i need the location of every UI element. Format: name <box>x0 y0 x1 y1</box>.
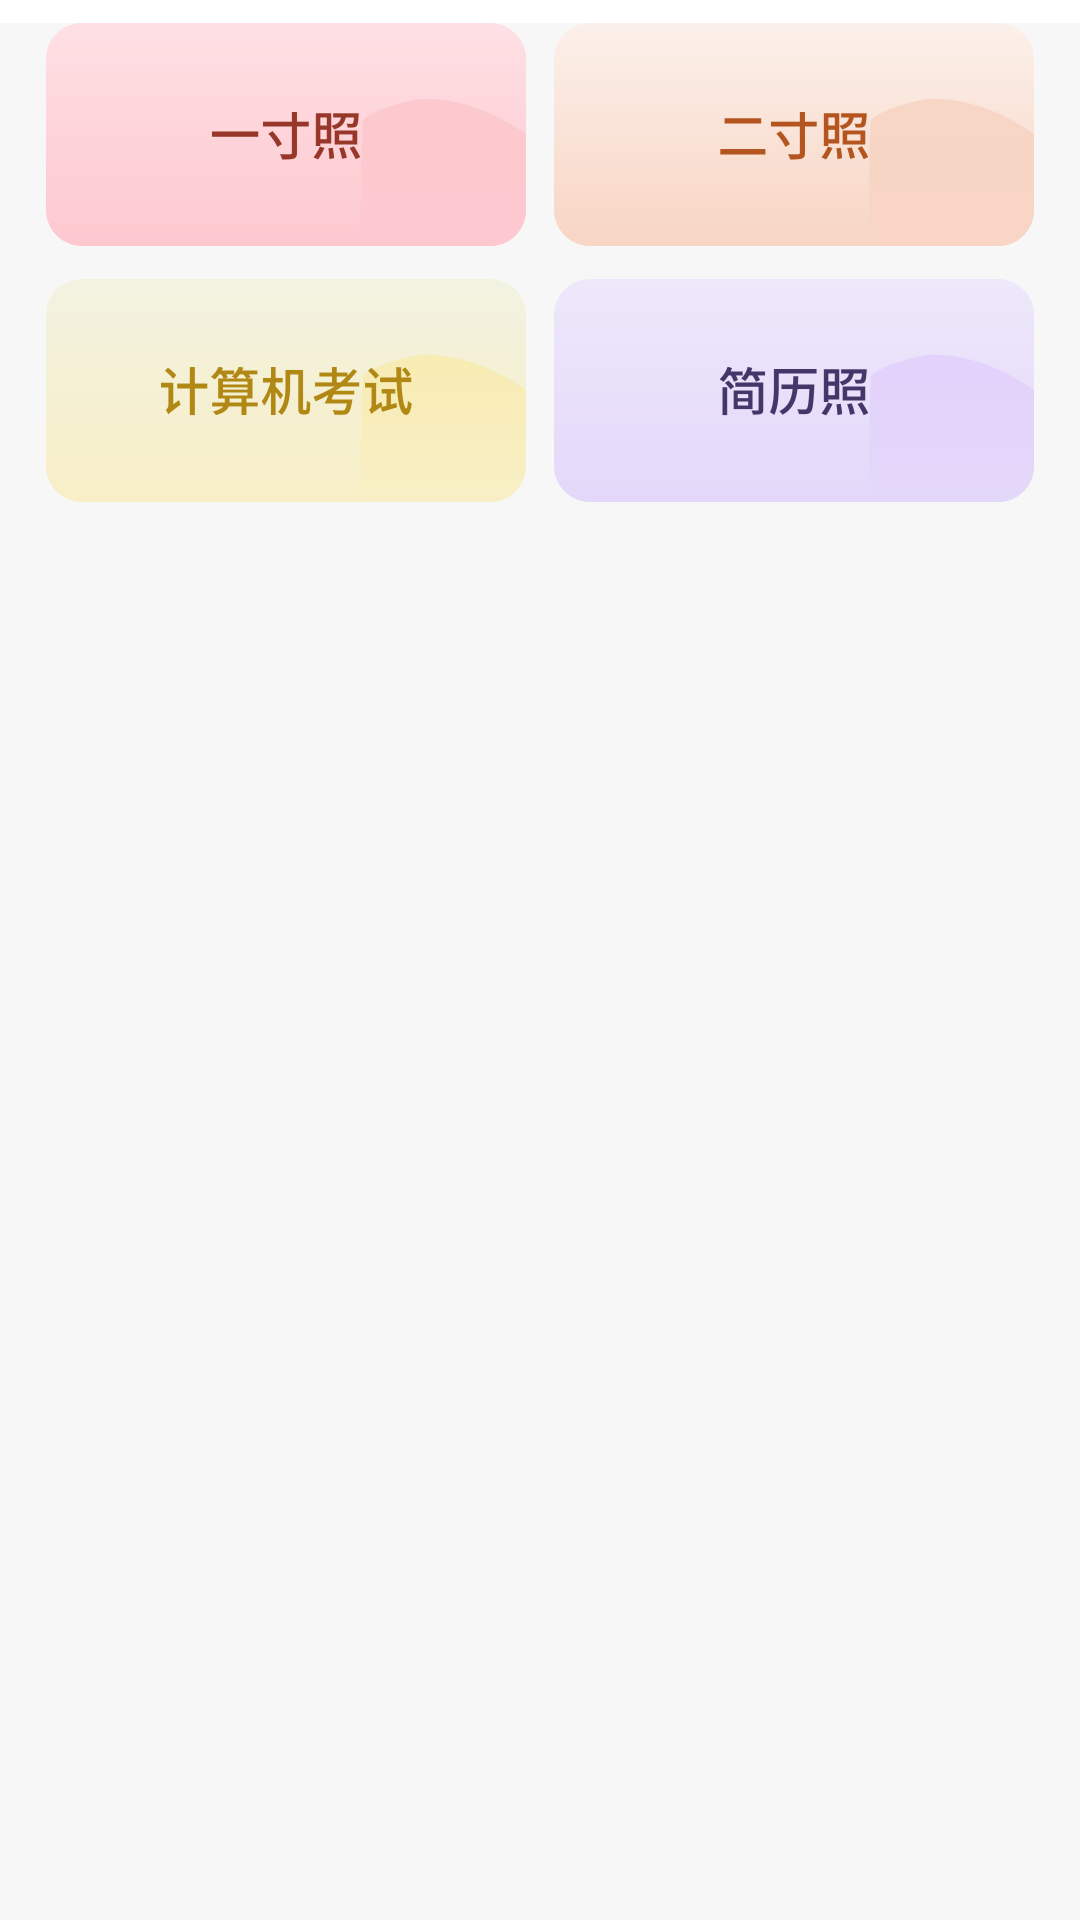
staticText: 一寸照 <box>209 96 362 169</box>
staticText: 计算机考试 <box>158 352 413 425</box>
staticText: 简历照 <box>717 352 870 425</box>
button[interactable]: 二寸照 <box>554 23 1034 246</box>
button[interactable]: 一寸照 <box>46 23 526 246</box>
button[interactable]: 计算机考试 <box>46 279 526 502</box>
button[interactable]: 简历照 <box>554 279 1034 502</box>
staticText: 二寸照 <box>717 96 870 169</box>
